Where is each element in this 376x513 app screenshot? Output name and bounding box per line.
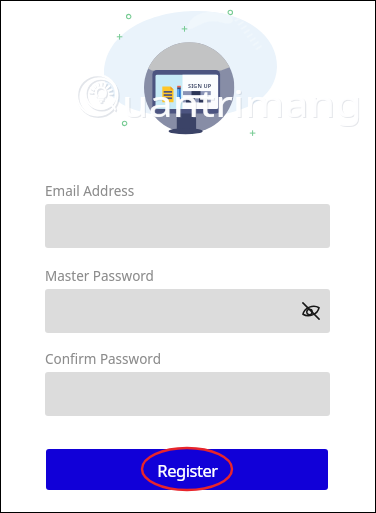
staticText: SIGN UP [188,82,212,89]
button[interactable]: Toggle password visibility [299,299,323,323]
staticText: Email Address [45,182,135,200]
staticText: Confirm Password [45,350,161,368]
button[interactable]: Register [46,449,328,490]
button[interactable]: Toggle password visibility [45,289,330,333]
staticText: uantrimang [123,78,364,128]
staticText: Register [157,459,218,481]
staticText: Master Password [45,267,154,285]
staticText: uantrimang [122,77,362,127]
